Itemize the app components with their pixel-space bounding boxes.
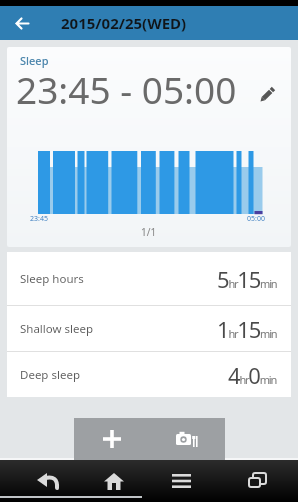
button[interactable] — [26, 460, 70, 502]
button[interactable]: Shallow sleep — [7, 306, 291, 351]
staticText: 2015/02/25(WED) — [61, 13, 187, 33]
button[interactable]: Deep sleep — [7, 352, 291, 397]
button[interactable] — [92, 460, 136, 502]
staticText: Sleep hours — [20, 271, 84, 287]
staticText: 05:00 — [247, 214, 265, 224]
staticText: 1hr15min — [217, 314, 277, 344]
button[interactable] — [0, 6, 44, 40]
staticText: Sleep — [20, 53, 49, 68]
button[interactable] — [159, 460, 203, 502]
staticText: Deep sleep — [20, 367, 80, 383]
button[interactable] — [235, 460, 279, 502]
button[interactable]: Sleep hours — [7, 252, 291, 305]
button[interactable] — [251, 79, 283, 111]
staticText: 23:45 - 05:00 — [16, 64, 237, 114]
staticText: 5hr15min — [217, 264, 277, 294]
staticText: 4hr0min — [228, 360, 277, 390]
button[interactable]: 2015/02/25(WED) — [0, 6, 298, 40]
staticText: 1/1 — [141, 225, 157, 239]
button[interactable] — [149, 418, 225, 460]
staticText: 23:45 — [30, 214, 48, 224]
staticText: Shallow sleep — [20, 321, 94, 337]
button[interactable] — [74, 418, 149, 460]
